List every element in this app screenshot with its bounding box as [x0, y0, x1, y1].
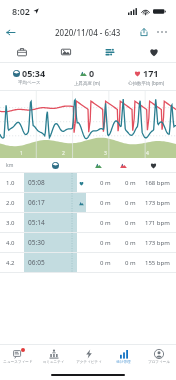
staticText: 171 — [143, 67, 159, 79]
staticText: アクティビティ — [76, 360, 102, 365]
button[interactable]: Photos — [44, 42, 88, 62]
staticText: 0 m — [100, 259, 111, 267]
button[interactable]: 4.2 — [0, 253, 176, 272]
staticText: ニュースフィード — [3, 360, 33, 365]
button[interactable]: 4.0 — [0, 233, 176, 252]
staticText: 1 — [20, 150, 23, 157]
button[interactable]: 統計管理 — [106, 344, 141, 370]
staticText: 173 bpm — [145, 239, 170, 247]
staticText: 0 — [89, 67, 95, 79]
button[interactable]: More options — [153, 23, 171, 41]
staticText: 06:05 — [28, 258, 45, 267]
staticText: 0 m — [125, 199, 136, 207]
staticText: 0 m — [100, 179, 111, 187]
button[interactable]: 171 — [117, 63, 176, 90]
staticText: 0 m — [100, 219, 111, 227]
staticText: 0 m — [125, 219, 136, 227]
staticText: 4.0 — [6, 239, 15, 247]
staticText: 171 bpm — [145, 219, 170, 227]
staticText: 2 — [62, 150, 65, 157]
staticText: 0 m — [125, 259, 136, 267]
staticText: 4 — [146, 150, 149, 157]
button[interactable]: Heart rate — [132, 42, 176, 62]
staticText: 平均ペース — [18, 80, 41, 86]
staticText: 統計管理 — [116, 360, 131, 365]
staticText: 05:34 — [22, 67, 46, 79]
button[interactable]: Back — [0, 22, 20, 42]
staticText: 0 m — [100, 199, 111, 207]
staticText: プロフィール — [148, 360, 170, 365]
staticText: 心拍数平均 (bpm) — [128, 80, 165, 86]
staticText: 05:14 — [28, 218, 45, 227]
button[interactable]: 3.0 — [0, 213, 176, 232]
button[interactable]: 0 — [58, 63, 117, 90]
button[interactable]: コミュニティ — [36, 344, 71, 370]
staticText: 168 bpm — [145, 179, 170, 187]
staticText: km — [6, 162, 14, 169]
staticText: 0 m — [125, 179, 136, 187]
button[interactable]: 2.0 — [0, 193, 176, 212]
button[interactable]: 1.0 — [0, 173, 176, 192]
button[interactable]: 05:34 — [0, 63, 58, 90]
button[interactable]: Analysis — [88, 42, 132, 62]
staticText: 8:02 — [12, 5, 30, 17]
button[interactable]: ニュースフィード — [0, 344, 36, 370]
staticText: 155 bpm — [145, 259, 170, 267]
staticText: 0 m — [100, 239, 111, 247]
staticText: 173 bpm — [145, 199, 170, 207]
staticText: 2.0 — [6, 199, 15, 207]
staticText: 06:17 — [28, 198, 45, 207]
staticText: 3 — [104, 150, 107, 157]
button[interactable]: Share — [135, 23, 153, 41]
staticText: 05:08 — [28, 178, 45, 187]
staticText: 上昇高度 (m) — [74, 80, 101, 86]
staticText: コミュニティ — [42, 360, 65, 365]
button[interactable]: Summary — [0, 42, 44, 62]
staticText: 4.2 — [6, 259, 15, 267]
staticText: 1.0 — [6, 179, 15, 187]
button[interactable]: アクティビティ — [71, 344, 106, 370]
staticText: 05:30 — [28, 238, 45, 247]
staticText: 2020/11/04 - 6:43 — [55, 27, 121, 38]
button[interactable]: プロフィール — [141, 344, 176, 370]
staticText: 3.0 — [6, 219, 15, 227]
staticText: 0 m — [125, 239, 136, 247]
